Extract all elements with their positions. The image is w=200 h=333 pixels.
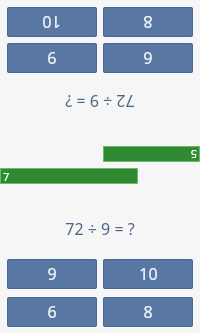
button[interactable]: 8 <box>103 297 193 327</box>
staticText: 8 <box>143 301 153 323</box>
staticText: 9 <box>47 263 57 285</box>
staticText: 72 ÷ 9 = ? <box>0 90 200 112</box>
staticText: 7 <box>3 169 10 184</box>
staticText: 8 <box>143 11 153 33</box>
button[interactable]: 9 <box>7 43 97 73</box>
staticText: 5 <box>190 147 197 162</box>
button[interactable]: 9 <box>7 259 97 289</box>
button[interactable]: 8 <box>103 7 193 37</box>
button[interactable]: 10 <box>103 259 193 289</box>
button[interactable]: 6 <box>7 297 97 327</box>
button[interactable]: 10 <box>7 7 97 37</box>
staticText: 9 <box>47 47 57 69</box>
staticText: 6 <box>143 47 153 69</box>
staticText: 10 <box>42 11 61 33</box>
button[interactable]: 6 <box>103 43 193 73</box>
staticText: 10 <box>139 263 158 285</box>
staticText: 6 <box>47 301 57 323</box>
staticText: 72 ÷ 9 = ? <box>0 218 200 240</box>
